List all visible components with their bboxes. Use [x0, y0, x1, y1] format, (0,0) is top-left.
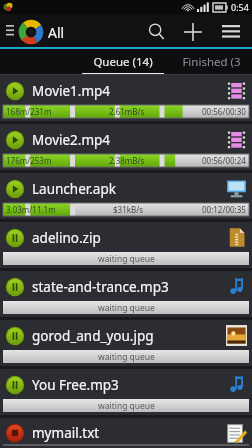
staticText: Launcher.apk	[32, 180, 116, 198]
button[interactable]: Pause download	[5, 130, 25, 150]
button[interactable]: Resume download	[5, 326, 25, 346]
button[interactable]: Resume download	[5, 228, 25, 248]
staticText: waiting queue	[98, 351, 155, 363]
staticText: All	[48, 23, 65, 42]
button[interactable]: Pause download	[0, 124, 252, 170]
staticText: 00:56/00:24	[202, 155, 246, 166]
staticText: waiting queue	[98, 253, 155, 265]
staticText: 2.61mB/s	[109, 106, 145, 117]
button[interactable]: Finished (3	[170, 49, 252, 75]
staticText: 00:56/00:30	[202, 106, 246, 117]
button[interactable]: Filter: All	[18, 21, 67, 43]
staticText: gorod_and_you.jpg	[32, 327, 154, 345]
staticText: 3.03m/11.1m	[6, 204, 56, 215]
button[interactable]: Stopped	[5, 423, 25, 443]
staticText: 168m/231m	[6, 106, 52, 117]
staticText: 00:12/00:35	[202, 204, 246, 215]
button[interactable]: Pause download	[5, 179, 25, 199]
staticText: mymail.txt	[32, 424, 100, 442]
staticText: $31kB/s	[113, 204, 144, 215]
button[interactable]: Pause download	[0, 173, 252, 219]
button[interactable]: Stopped	[0, 418, 252, 448]
button[interactable]: Add download	[174, 14, 212, 49]
staticText: adelino.zip	[32, 229, 101, 247]
button[interactable]: Menu drawer	[2, 21, 18, 43]
button[interactable]: Resume download	[5, 375, 25, 395]
staticText: waiting queue	[98, 302, 155, 314]
staticText: waiting queue	[98, 400, 155, 412]
button[interactable]: Queue (14)	[75, 49, 170, 75]
button[interactable]: Resume download	[0, 271, 252, 317]
staticText: 2.38mB/s	[109, 155, 145, 166]
staticText: Movie2.mp4	[32, 131, 111, 149]
button[interactable]: Resume download	[5, 277, 25, 297]
button[interactable]: Pause download	[0, 75, 252, 121]
button[interactable]: More options	[212, 14, 250, 49]
button[interactable]: Resume download	[0, 222, 252, 268]
staticText: Movie1.mp4	[32, 82, 111, 100]
staticText: Queue (14)	[93, 54, 153, 70]
staticText: Finished (3	[182, 54, 241, 70]
button[interactable]: Resume download	[0, 320, 252, 366]
staticText: state-and-trance.mp3	[32, 278, 169, 296]
button[interactable]: Resume download	[0, 369, 252, 415]
staticText: You Free.mp3	[32, 376, 119, 394]
button[interactable]: Search	[138, 14, 174, 49]
button[interactable]: Pause download	[5, 81, 25, 101]
staticText: 176m/253m	[6, 155, 52, 166]
staticText: 0:54	[231, 1, 249, 13]
